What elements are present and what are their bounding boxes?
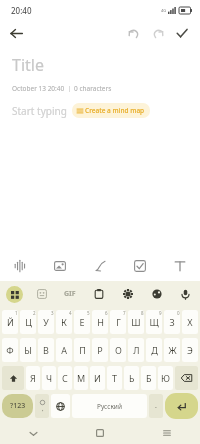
staticText: 4 — [69, 310, 72, 316]
button[interactable]: Done — [170, 21, 194, 45]
button[interactable]: Р — [92, 338, 108, 362]
button[interactable]: Checklist — [120, 251, 160, 281]
staticText: 8 — [141, 310, 144, 316]
button[interactable]: П — [74, 338, 90, 362]
staticText: Ж — [168, 344, 177, 356]
button[interactable]: М — [74, 366, 88, 390]
staticText: Ч — [46, 372, 53, 384]
staticText: October 13 20:40 — [12, 84, 65, 93]
staticText: Г — [116, 316, 121, 328]
staticText: Ц — [25, 316, 32, 328]
staticText: Create a mind map — [85, 106, 145, 115]
button[interactable]: Й — [2, 310, 18, 334]
staticText: ?123 — [10, 401, 26, 411]
button[interactable]: Ц — [20, 310, 36, 334]
button[interactable]: Ы — [20, 338, 36, 362]
button[interactable]: К — [56, 310, 72, 334]
button[interactable]: З — [164, 310, 180, 334]
button[interactable]: Ю — [158, 366, 173, 390]
button[interactable]: Щ — [146, 310, 162, 334]
staticText: Я — [30, 372, 36, 384]
button[interactable]: Г — [110, 310, 126, 334]
button[interactable]: Recents — [133, 422, 200, 444]
staticText: Х — [187, 316, 193, 328]
button[interactable]: Shift — [2, 366, 24, 390]
button[interactable]: У — [38, 310, 54, 334]
button[interactable]: . — [149, 394, 163, 418]
button[interactable]: Х — [182, 310, 198, 334]
staticText: Л — [133, 344, 140, 356]
button[interactable]: Text format — [160, 251, 200, 281]
staticText: А — [61, 344, 67, 356]
button[interactable]: Ь — [124, 366, 139, 390]
button[interactable]: Audio — [0, 251, 40, 281]
button[interactable]: Ф — [2, 338, 18, 362]
staticText: Start typing — [12, 104, 67, 118]
button[interactable]: Т — [107, 366, 122, 390]
button[interactable]: Э — [182, 338, 198, 362]
button[interactable]: Theme — [142, 281, 171, 307]
button[interactable]: ?123 — [2, 394, 33, 418]
staticText: 2 — [33, 310, 36, 316]
button[interactable]: Backspace — [175, 366, 198, 390]
staticText: Е — [79, 316, 85, 328]
button[interactable]: А — [56, 338, 72, 362]
staticText: GIF — [64, 289, 76, 299]
staticText: У — [43, 316, 49, 328]
staticText: Ф — [6, 344, 14, 356]
button[interactable]: Change language — [51, 394, 70, 418]
staticText: 6 — [105, 310, 108, 316]
button[interactable]: Clipboard — [84, 281, 113, 307]
staticText: , — [42, 405, 44, 413]
button[interactable]: Е — [74, 310, 90, 334]
staticText: 5 — [87, 310, 90, 316]
button[interactable]: Back — [5, 22, 27, 44]
staticText: 0 characters — [74, 84, 112, 93]
staticText: Ю — [161, 372, 170, 384]
staticText: И — [94, 372, 101, 384]
button[interactable]: В — [38, 338, 54, 362]
staticText: . — [155, 401, 157, 411]
button[interactable]: И — [90, 366, 105, 390]
button[interactable]: Л — [128, 338, 144, 362]
button[interactable]: Back — [0, 422, 66, 444]
button[interactable]: С — [58, 366, 72, 390]
button[interactable]: Ж — [164, 338, 180, 362]
staticText: Р — [97, 344, 103, 356]
button[interactable]: Voice input — [171, 281, 200, 307]
button[interactable]: Undo — [122, 21, 146, 45]
button[interactable]: Settings — [113, 281, 142, 307]
button[interactable]: Home — [66, 422, 133, 444]
button[interactable]: Emoji and comma — [35, 394, 49, 418]
staticText: Ь — [129, 372, 135, 384]
button[interactable]: Д — [146, 338, 162, 362]
button[interactable]: Б — [141, 366, 156, 390]
button[interactable]: Redo — [146, 21, 170, 45]
button[interactable]: Title — [12, 54, 44, 76]
staticText: К — [61, 316, 67, 328]
staticText: Б — [146, 372, 152, 384]
button[interactable]: Enter — [165, 393, 198, 419]
staticText: 1 — [15, 310, 18, 316]
button[interactable]: Русский — [72, 394, 147, 418]
button[interactable]: Stickers — [0, 281, 28, 307]
button[interactable]: Н — [92, 310, 108, 334]
button[interactable]: Draw — [80, 251, 120, 281]
staticText: Русский — [97, 402, 122, 411]
button[interactable]: Emoji — [28, 281, 56, 307]
staticText: С — [62, 372, 68, 384]
staticText: М — [77, 372, 86, 384]
staticText: В — [43, 344, 49, 356]
staticText: 9 — [159, 310, 162, 316]
button[interactable]: GIF — [56, 281, 84, 307]
staticText: 7 — [123, 310, 126, 316]
button[interactable]: Create a mind map — [72, 103, 150, 118]
button[interactable]: Ч — [42, 366, 56, 390]
button[interactable]: О — [110, 338, 126, 362]
button[interactable]: Я — [26, 366, 40, 390]
staticText: Щ — [149, 316, 159, 328]
button[interactable]: Image — [40, 251, 80, 281]
staticText: Ш — [131, 316, 141, 328]
staticText: Д — [151, 344, 158, 356]
button[interactable]: Ш — [128, 310, 144, 334]
